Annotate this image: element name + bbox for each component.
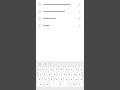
button[interactable]: Key	[69, 67, 73, 72]
button[interactable]: Keyboard tool	[43, 62, 46, 65]
button[interactable]: Key	[49, 67, 53, 72]
button[interactable]: Keyboard tool	[48, 62, 51, 65]
button[interactable]: Key	[45, 82, 49, 87]
button[interactable]: Key	[67, 72, 71, 77]
button[interactable]: Key	[71, 82, 75, 87]
button[interactable]: Key	[69, 77, 73, 82]
button[interactable]: Key	[59, 67, 63, 72]
button[interactable]: Open link in incognito tab	[36, 8, 84, 15]
button[interactable]: Key	[57, 72, 61, 77]
button[interactable]: Share	[36, 22, 84, 29]
button[interactable]: Keyboard tool	[38, 62, 41, 65]
button[interactable]: Key	[50, 82, 70, 87]
button[interactable]: Key	[54, 77, 58, 82]
button[interactable]: Key	[47, 72, 51, 77]
button[interactable]: Key	[54, 67, 58, 72]
button[interactable]: Key	[43, 77, 48, 82]
button[interactable]: Key	[62, 72, 66, 77]
button[interactable]: Key	[72, 72, 76, 77]
button[interactable]: Key	[43, 72, 46, 77]
button[interactable]: Key	[64, 67, 68, 72]
button[interactable]: Key	[45, 67, 48, 72]
button[interactable]: Key	[52, 72, 56, 77]
button[interactable]: Key	[39, 72, 42, 77]
button[interactable]: Key	[77, 72, 81, 77]
button[interactable]: Open link in new tab	[36, 1, 84, 8]
button[interactable]: Key	[37, 82, 44, 87]
button[interactable]: Key	[49, 77, 53, 82]
button[interactable]: Key	[59, 77, 63, 82]
button[interactable]: Key	[41, 67, 44, 72]
button[interactable]: Key	[76, 82, 83, 87]
button[interactable]: Key	[79, 77, 83, 82]
button[interactable]: Key	[79, 67, 83, 72]
button[interactable]: Key	[64, 77, 68, 82]
button[interactable]: Copy link address	[36, 15, 84, 22]
button[interactable]: Key	[37, 77, 42, 82]
button[interactable]: Key	[74, 77, 78, 82]
button[interactable]: Key	[37, 67, 40, 72]
button[interactable]: Key	[74, 67, 78, 72]
